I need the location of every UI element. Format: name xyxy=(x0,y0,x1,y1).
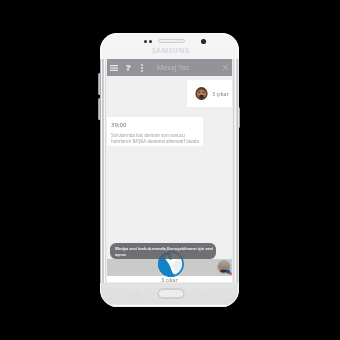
button[interactable]: 3 çıkar xyxy=(187,80,232,107)
staticText: Sorularında kaç dersten son sonucu hatır… xyxy=(111,132,201,144)
staticText: ? xyxy=(126,61,131,74)
staticText: Medya sesi kısık durumda,Konuşabilmem iç… xyxy=(115,246,214,258)
staticText: 3 çıkar xyxy=(212,90,229,97)
button[interactable]: Volume up xyxy=(98,73,102,95)
button[interactable]: Help xyxy=(121,59,135,76)
button[interactable]: Volume down xyxy=(98,98,102,120)
button[interactable]: Home xyxy=(157,288,185,299)
staticText: Mesaj Yaz xyxy=(157,63,190,73)
button[interactable]: Navigation menu xyxy=(107,59,121,76)
button[interactable]: Voice assistant xyxy=(158,251,184,277)
button[interactable]: More options xyxy=(135,59,149,76)
button[interactable]: Profile xyxy=(217,260,231,274)
button[interactable]: Close xyxy=(218,59,232,76)
staticText: 39;00 xyxy=(111,121,127,129)
button[interactable]: Power xyxy=(236,107,240,128)
staticText: SAMSUNG xyxy=(152,46,191,56)
staticText: 3 çıkar xyxy=(161,276,178,282)
